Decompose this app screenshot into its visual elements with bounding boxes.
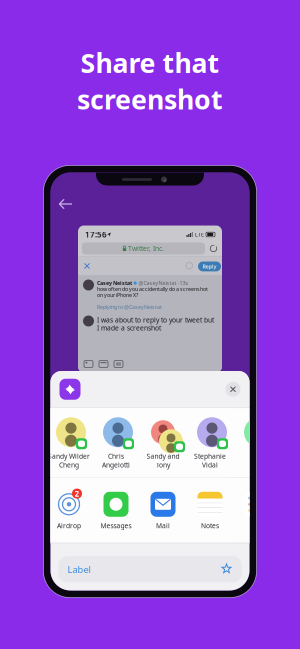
staticText: 2 <box>74 488 79 499</box>
staticText: Casey Neistat <box>97 279 132 287</box>
staticText: how often do you accidentally do a scree… <box>97 285 208 293</box>
button[interactable]: 2 <box>45 490 92 530</box>
button[interactable]: Close <box>225 382 240 397</box>
staticText: I made a screenshot <box>97 323 161 332</box>
button[interactable]: Sandy and <box>139 416 186 469</box>
staticText: Re <box>253 521 261 530</box>
button[interactable]: Stephanie <box>186 416 233 469</box>
staticText: Replying to @CaseyNeistat <box>97 303 162 311</box>
staticText: Messages <box>100 521 131 530</box>
staticText: Sandy Wilder <box>48 452 90 461</box>
staticText: Twitter, Inc. <box>128 244 164 253</box>
staticText: LTE <box>195 231 204 238</box>
staticText: Stephanie <box>194 452 226 461</box>
staticText: Chris <box>108 452 124 461</box>
button[interactable]: Label <box>58 556 241 582</box>
button[interactable] <box>233 416 280 469</box>
staticText: Share that <box>80 45 219 80</box>
button[interactable]: Notes <box>186 490 233 530</box>
button[interactable]: App options <box>59 379 80 400</box>
staticText: Cheng <box>59 461 79 469</box>
staticText: @CaseyNeistat · 13s <box>138 279 188 287</box>
staticText: Tony <box>156 461 170 469</box>
staticText: Vidal <box>202 461 218 469</box>
staticText: Angelotti <box>102 461 130 469</box>
staticText: 17:56 <box>85 229 107 240</box>
button[interactable]: Sandy Wilder <box>45 416 92 469</box>
staticText: on your iPhone X? <box>97 291 138 299</box>
staticText: Reply <box>202 263 216 270</box>
button[interactable]: Back <box>54 194 76 213</box>
button[interactable]: Chris <box>92 416 139 469</box>
staticText: Notes <box>201 521 219 530</box>
button[interactable]: Messages <box>92 490 139 530</box>
staticText: Sandy and <box>146 452 179 461</box>
staticText: Label <box>67 563 90 575</box>
staticText: Airdrop <box>57 521 81 530</box>
button[interactable]: Mail <box>139 490 186 530</box>
staticText: I was about to reply to your tweet but <box>97 315 214 324</box>
staticText: screenshot <box>77 81 223 117</box>
staticText: Mail <box>156 521 170 530</box>
button[interactable]: Re <box>233 490 280 530</box>
